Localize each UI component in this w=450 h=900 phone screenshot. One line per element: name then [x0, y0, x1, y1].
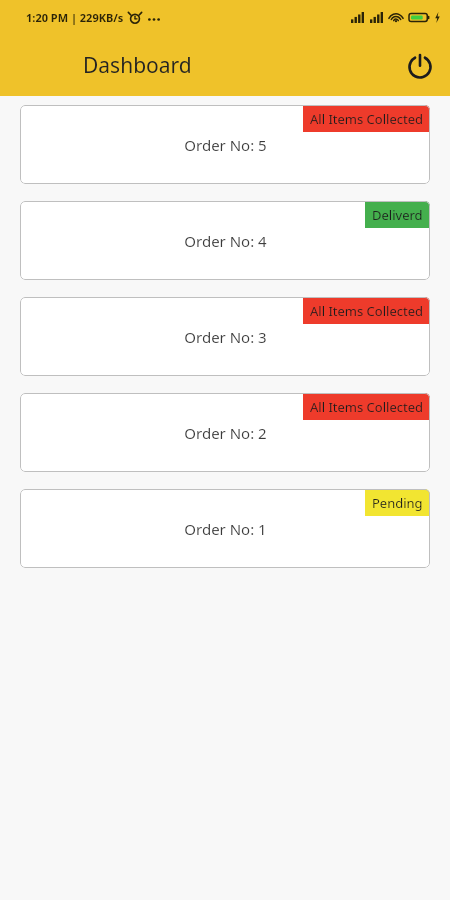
- button[interactable]: Order No: 4: [20, 201, 430, 280]
- staticText: 1:20 PM | 229KB/s: [26, 10, 124, 25]
- staticText: Order No: 5: [184, 135, 267, 155]
- staticText: Dashboard: [83, 51, 192, 80]
- staticText: Deliverd: [372, 206, 423, 224]
- staticText: Order No: 1: [184, 519, 267, 539]
- button[interactable]: Order No: 1: [20, 489, 430, 568]
- button[interactable]: Order No: 5: [20, 105, 430, 184]
- staticText: Order No: 4: [184, 231, 267, 251]
- button[interactable]: Order No: 2: [20, 393, 430, 472]
- staticText: All Items Collected: [310, 302, 423, 320]
- button[interactable]: Order No: 3: [20, 297, 430, 376]
- staticText: Order No: 3: [184, 327, 267, 347]
- staticText: Order No: 2: [184, 423, 267, 443]
- staticText: All Items Collected: [310, 398, 423, 416]
- button[interactable]: Logout: [398, 44, 442, 88]
- staticText: All Items Collected: [310, 110, 423, 128]
- staticText: Pending: [372, 494, 423, 512]
